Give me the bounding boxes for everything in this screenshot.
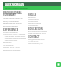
staticText: adipiscing elit sed do eiusmod tempor.	[3, 22, 26, 27]
staticText: Senior Product Designer	[5, 7, 28, 10]
staticText: BSc Interaction Design	[28, 30, 48, 32]
staticText: Design systems	[28, 22, 42, 24]
staticText: +1 555 0134	[28, 40, 39, 42]
staticText: San Francisco, CA	[28, 42, 43, 44]
staticText: Accessibility	[28, 24, 39, 26]
staticText: EXPERIENCE	[3, 28, 19, 31]
button[interactable]: App logo	[56, 62, 61, 67]
staticText: Acme Corp 2019 - Present	[3, 33, 26, 35]
staticText: CONTACT	[28, 35, 40, 38]
staticText: ALEX MORGAN	[5, 3, 25, 6]
staticText: UX Designer	[3, 44, 14, 46]
staticText: - Led design system work	[3, 35, 26, 37]
staticText: - Shipped mobile redesign	[3, 37, 26, 39]
staticText: PROFESSIONAL SUMMARY	[3, 11, 26, 17]
staticText: Lorem ipsum dolor sit amet, consectetur	[3, 17, 26, 22]
staticText: - Mentored four designers	[3, 39, 26, 43]
staticText: References available	[3, 49, 21, 51]
staticText: EDUCATION	[28, 27, 43, 30]
staticText: SKILLS	[28, 13, 37, 16]
staticText: Globex 2016 - 2019	[3, 46, 20, 48]
staticText: Prototyping	[28, 20, 38, 22]
staticText: Wireframing	[28, 18, 39, 20]
staticText: alex@example.com	[28, 38, 45, 40]
staticText: Research	[28, 16, 36, 18]
staticText: Product Designer	[3, 31, 18, 33]
staticText: State University 2016	[28, 32, 46, 34]
